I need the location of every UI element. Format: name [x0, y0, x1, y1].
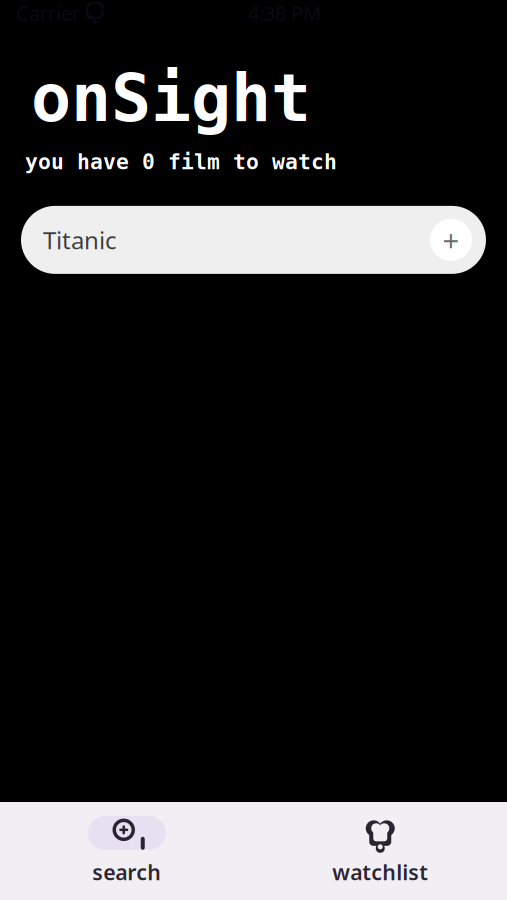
staticText: 4:38 PM — [248, 0, 321, 26]
button[interactable]: watchlist — [253, 808, 507, 894]
staticText: onSight — [31, 60, 311, 136]
staticText: Titanic — [43, 224, 117, 256]
button[interactable]: search — [0, 808, 253, 894]
staticText: watchlist — [332, 858, 428, 886]
staticText: Carrier — [16, 0, 80, 26]
button[interactable]: Titanic — [21, 206, 486, 274]
staticText: + — [442, 220, 459, 259]
button[interactable]: Add — [430, 219, 472, 261]
staticText: you have 0 film to watch — [25, 150, 337, 174]
staticText: search — [92, 858, 161, 886]
